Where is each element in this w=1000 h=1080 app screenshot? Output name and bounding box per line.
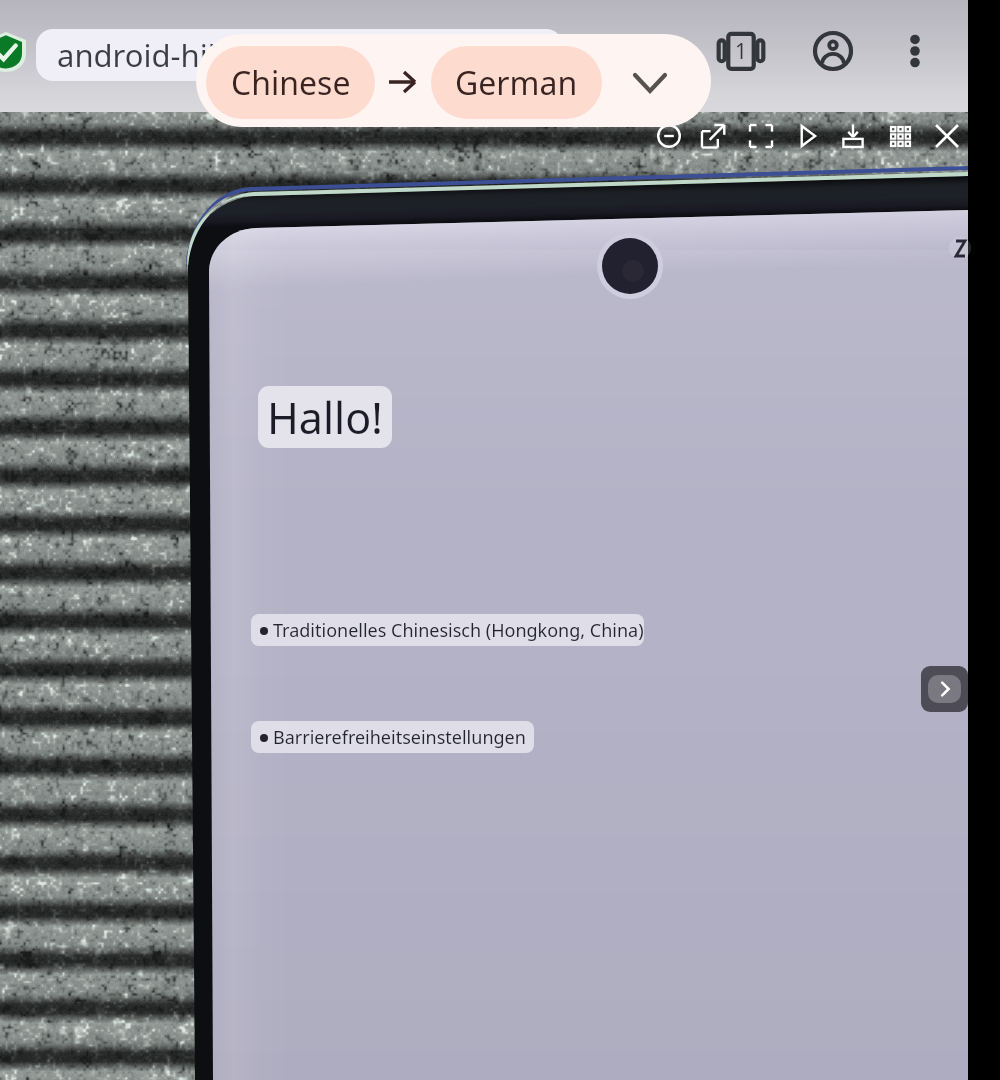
staticText: Hallo! <box>267 388 383 447</box>
button[interactable]: Switch tabs, 1 open <box>717 27 765 75</box>
button[interactable]: Chinese <box>196 34 711 127</box>
button[interactable]: Slideshow <box>788 117 826 155</box>
staticText: Traditionelles Chinesisch (Hongkong, Chi… <box>273 618 644 643</box>
staticText: android-hilfe.de/forum <box>57 34 391 76</box>
button[interactable]: android-hilfe.de/forum <box>36 29 563 81</box>
button[interactable]: More translate options <box>620 53 680 113</box>
button[interactable]: German <box>431 46 602 119</box>
staticText: Barrierefreiheitseinstellungen <box>273 725 526 750</box>
button[interactable]: Open in new tab <box>694 117 732 155</box>
button[interactable]: Next image <box>921 666 968 712</box>
button[interactable]: Account <box>809 27 857 75</box>
button[interactable]: Close <box>928 117 966 155</box>
staticText: 1 <box>735 37 748 66</box>
button[interactable]: Download <box>834 117 872 155</box>
button[interactable]: Zoom out <box>650 117 688 155</box>
staticText: German <box>455 61 578 105</box>
staticText: Chinese <box>231 61 351 105</box>
button[interactable]: Chinese <box>206 46 375 119</box>
button[interactable]: Fullscreen <box>742 117 780 155</box>
button[interactable]: Grid view <box>881 117 919 155</box>
button[interactable]: More options <box>891 27 939 75</box>
